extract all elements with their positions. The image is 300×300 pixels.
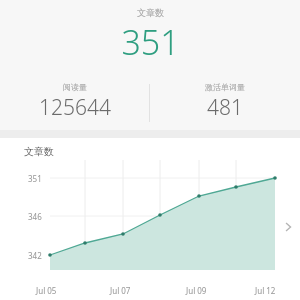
staticText: 文章数	[24, 145, 54, 158]
button[interactable]: 阅读量	[0, 79, 149, 127]
staticText: 阅读量	[63, 82, 87, 92]
staticText: 351	[28, 173, 42, 184]
button[interactable]: 激活单词量	[150, 79, 300, 127]
button[interactable]: Next	[276, 215, 300, 239]
staticText: 346	[28, 211, 42, 222]
staticText: 125644	[39, 93, 111, 122]
button[interactable]: 文章数	[0, 138, 300, 300]
button[interactable]: 文章数	[0, 0, 300, 130]
staticText: Jul 07	[110, 285, 131, 296]
staticText: Jul 12	[255, 285, 276, 296]
staticText: 激活单词量	[205, 82, 245, 92]
staticText: Jul 09	[186, 285, 207, 296]
staticText: 351	[121, 19, 180, 65]
staticText: Jul 05	[36, 285, 57, 296]
staticText: 文章数	[137, 7, 164, 18]
staticText: 481	[207, 93, 243, 122]
staticText: 342	[28, 250, 42, 261]
